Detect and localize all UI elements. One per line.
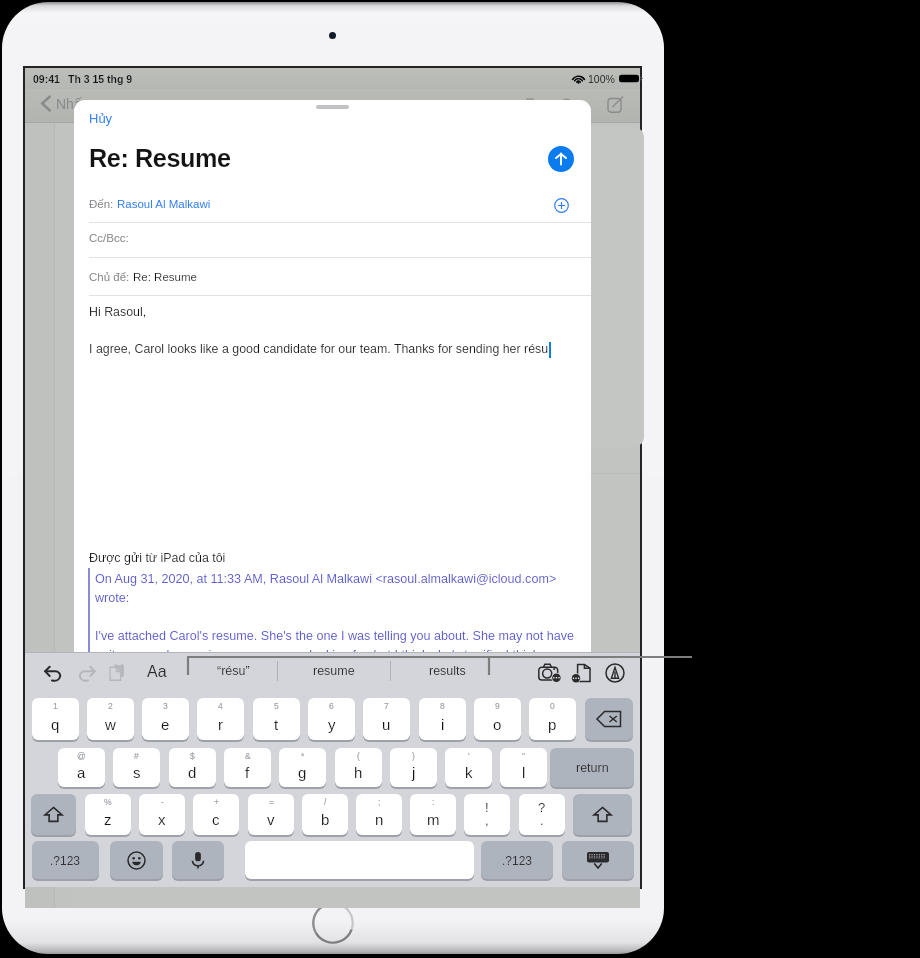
button[interactable]: $ <box>169 748 216 787</box>
button[interactable]: Insert document <box>566 657 597 688</box>
staticText: Th 3 15 thg 9 <box>68 73 133 85</box>
staticText: = <box>269 797 274 806</box>
staticText: j <box>412 764 416 781</box>
button[interactable]: ! <box>464 794 510 835</box>
button[interactable]: return <box>550 748 634 787</box>
button[interactable]: 7 <box>363 698 410 740</box>
button[interactable]: 5 <box>253 698 300 740</box>
button[interactable]: Undo <box>38 657 68 687</box>
button[interactable]: % <box>85 794 131 835</box>
staticText: Hi Rasoul, <box>89 305 147 319</box>
button[interactable]: Compose <box>604 94 625 115</box>
button[interactable]: 6 <box>308 698 355 740</box>
staticText: y <box>328 716 336 733</box>
button[interactable]: ; <box>356 794 402 835</box>
staticText: u <box>382 716 391 733</box>
staticText: , <box>485 813 489 828</box>
button[interactable]: & <box>224 748 271 787</box>
button[interactable]: @ <box>58 748 105 787</box>
button[interactable]: Paste <box>102 657 132 687</box>
button[interactable]: Space <box>245 841 474 879</box>
staticText: e <box>161 716 170 733</box>
button[interactable]: Home <box>312 902 354 944</box>
button[interactable]: “résu” <box>189 652 277 690</box>
staticText: “résu” <box>217 664 250 678</box>
staticText: ! <box>485 800 489 815</box>
button[interactable] <box>110 841 163 879</box>
staticText: c <box>212 811 220 828</box>
button[interactable] <box>245 841 474 879</box>
button[interactable]: .?123 <box>481 841 553 879</box>
button[interactable]: Nhấ <box>41 95 82 112</box>
staticText: . <box>540 813 544 828</box>
button[interactable] <box>172 841 224 879</box>
staticText: I've attached Carol's resume. She's the … <box>95 629 575 643</box>
staticText: # <box>134 751 139 760</box>
button[interactable]: Add contact <box>550 194 572 216</box>
staticText: Cc/Bcc: <box>89 232 129 245</box>
button[interactable]: : <box>410 794 456 835</box>
button[interactable]: Send <box>548 146 574 172</box>
button[interactable]: ' <box>445 748 492 787</box>
staticText: g <box>298 764 307 781</box>
staticText: 0 <box>550 701 555 710</box>
button[interactable]: .?123 <box>32 841 99 879</box>
staticText: 8 <box>440 701 445 710</box>
staticText: 100% <box>588 73 615 85</box>
button[interactable]: 8 <box>419 698 466 740</box>
button[interactable] <box>31 794 76 835</box>
button[interactable]: # <box>113 748 160 787</box>
button[interactable]: 1 <box>32 698 79 740</box>
staticText: $ <box>190 751 195 760</box>
staticText: 6 <box>329 701 334 710</box>
staticText: q <box>51 716 60 733</box>
staticText: w <box>105 716 116 733</box>
staticText: p <box>548 716 557 733</box>
staticText: Hủy <box>89 111 113 126</box>
button[interactable]: 9 <box>474 698 521 740</box>
staticText: m <box>427 811 440 828</box>
button[interactable]: " <box>500 748 547 787</box>
staticText: On Aug 31, 2020, at 11:33 AM, Rasoul Al … <box>95 572 557 586</box>
staticText: k <box>465 764 473 781</box>
staticText: - <box>161 797 164 806</box>
staticText: & <box>245 751 251 760</box>
staticText: ? <box>538 800 546 815</box>
button[interactable]: Markup <box>599 657 630 688</box>
staticText: ; <box>378 797 381 806</box>
button[interactable] <box>573 794 632 835</box>
button[interactable]: = <box>248 794 294 835</box>
staticText: v <box>267 811 275 828</box>
button[interactable]: 4 <box>197 698 244 740</box>
button[interactable]: * <box>279 748 326 787</box>
button[interactable]: resume <box>278 652 390 690</box>
staticText: n <box>375 811 384 828</box>
button[interactable]: Aa <box>143 657 171 687</box>
button[interactable]: results <box>391 652 503 690</box>
button[interactable] <box>562 841 634 879</box>
staticText: t <box>274 716 279 733</box>
button[interactable]: Redo <box>71 657 101 687</box>
staticText: 9 <box>495 701 500 710</box>
button[interactable]: 2 <box>87 698 134 740</box>
button[interactable]: Hủy <box>86 109 116 128</box>
staticText: .?123 <box>502 854 533 867</box>
staticText: .?123 <box>50 854 81 867</box>
button[interactable]: ? <box>519 794 565 835</box>
staticText: : <box>432 797 435 806</box>
button[interactable]: / <box>302 794 348 835</box>
button[interactable]: ( <box>335 748 382 787</box>
button[interactable]: ) <box>390 748 437 787</box>
button[interactable]: Move to folder <box>561 94 582 115</box>
button[interactable] <box>585 698 633 740</box>
staticText: z <box>104 811 112 828</box>
button[interactable]: + <box>193 794 239 835</box>
button[interactable]: - <box>139 794 185 835</box>
button[interactable]: Insert photo <box>534 657 565 688</box>
staticText: Được gửi từ iPad của tôi <box>89 551 226 565</box>
staticText: I agree, Carol looks like a good candida… <box>89 342 549 356</box>
button[interactable]: 3 <box>142 698 189 740</box>
button[interactable]: Delete <box>519 94 540 115</box>
button[interactable]: 0 <box>529 698 576 740</box>
staticText: x <box>158 811 166 828</box>
